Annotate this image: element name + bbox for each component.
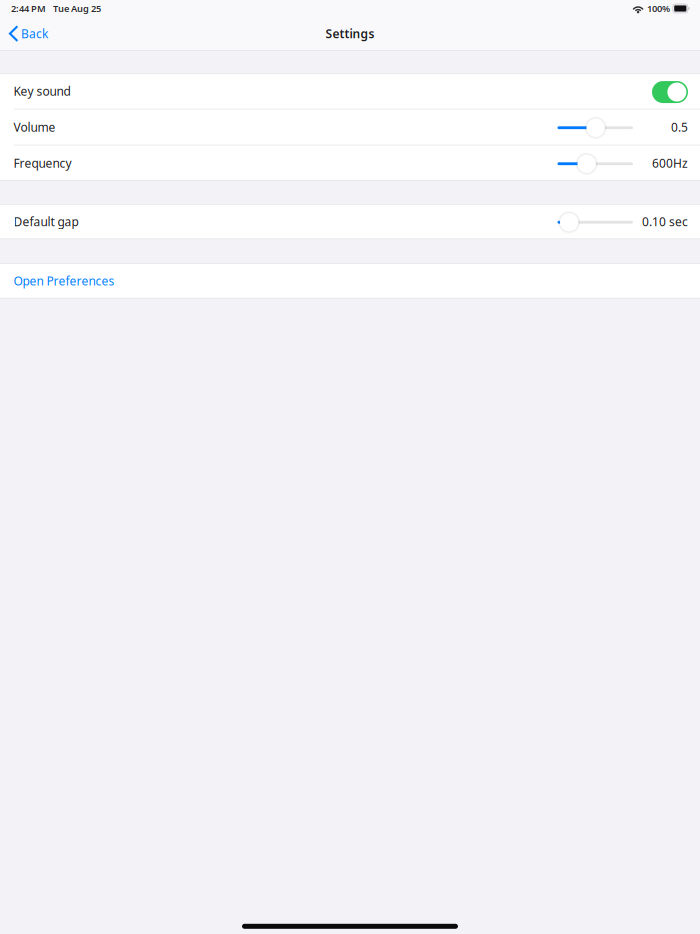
staticText: Settings xyxy=(325,26,374,41)
button[interactable]: Default gap xyxy=(557,211,633,233)
staticText: Volume xyxy=(14,119,56,135)
staticText: Key sound xyxy=(14,83,71,99)
button[interactable]: Back xyxy=(0,19,56,48)
button[interactable]: Key sound xyxy=(652,81,688,103)
staticText: 0.10 sec xyxy=(642,214,688,229)
staticText: 600Hz xyxy=(652,155,688,171)
button[interactable]: Volume xyxy=(557,117,633,139)
staticText: Back xyxy=(21,26,48,41)
staticText: Frequency xyxy=(14,155,72,171)
staticText: Tue Aug 25 xyxy=(53,2,101,15)
staticText: Default gap xyxy=(14,214,79,229)
button[interactable]: Key sound xyxy=(0,73,700,109)
staticText: 0.5 xyxy=(671,119,688,135)
staticText: 100% xyxy=(647,2,670,15)
staticText: Open Preferences xyxy=(14,273,115,289)
button[interactable]: Open Preferences xyxy=(0,263,700,298)
staticText: 2:44 PM xyxy=(11,2,46,15)
button[interactable]: Frequency xyxy=(557,153,633,175)
